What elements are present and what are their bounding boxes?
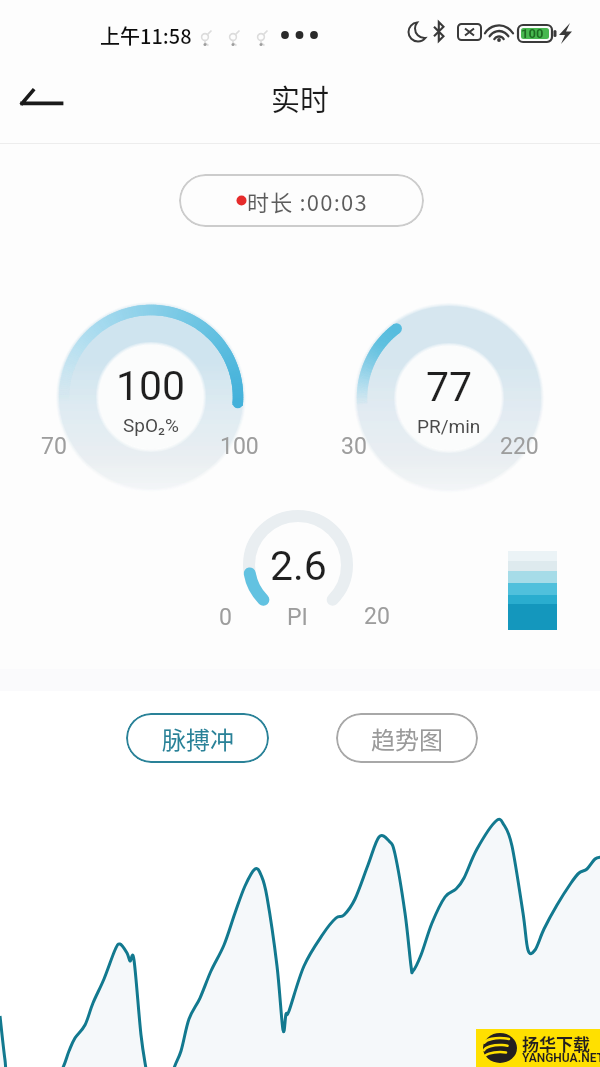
staticText: PI	[287, 604, 308, 631]
staticText: 100	[220, 433, 259, 460]
staticText: PR/min	[417, 415, 481, 437]
staticText: 30	[341, 433, 367, 460]
staticText: 70	[41, 433, 67, 460]
staticText: 77	[426, 363, 473, 411]
staticText: 实时	[0, 77, 600, 119]
staticText: 100	[521, 26, 544, 41]
staticText: SpO₂%	[123, 414, 179, 436]
button[interactable]: Back	[4, 70, 64, 126]
button[interactable]: 脉搏冲	[126, 713, 269, 763]
staticText: 脉搏冲	[162, 721, 234, 756]
staticText: 20	[364, 603, 390, 630]
staticText: 时长 :00:03	[247, 185, 368, 217]
button[interactable]: 时长 :00:03	[179, 174, 424, 227]
staticText: 0	[219, 604, 232, 631]
staticText: 2.6	[270, 542, 327, 590]
staticText: 上午11:58	[100, 21, 192, 50]
staticText: YANGHUA.NET	[522, 1051, 600, 1065]
staticText: 100	[116, 362, 186, 410]
staticText: 扬华下载	[522, 1031, 590, 1056]
staticText: 220	[500, 433, 539, 460]
button[interactable]: 趋势图	[336, 713, 478, 763]
staticText: 趋势图	[371, 721, 443, 756]
